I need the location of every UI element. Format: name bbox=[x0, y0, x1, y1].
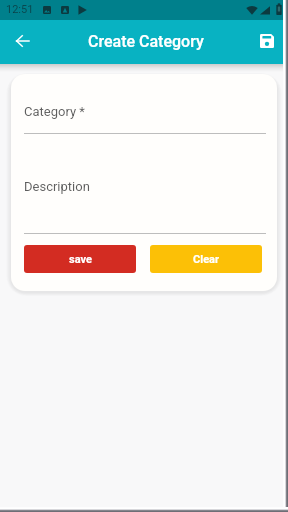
button[interactable]: Back bbox=[6, 24, 39, 57]
button[interactable]: Save bbox=[252, 26, 282, 56]
button[interactable]: save bbox=[24, 245, 136, 273]
staticText: Category * bbox=[24, 104, 85, 119]
staticText: Clear bbox=[193, 253, 219, 266]
staticText: Create Category bbox=[88, 32, 204, 51]
staticText: Description bbox=[24, 179, 90, 194]
staticText: save bbox=[69, 253, 92, 266]
staticText: 12:51 bbox=[6, 3, 34, 16]
button[interactable]: Clear bbox=[150, 245, 262, 273]
